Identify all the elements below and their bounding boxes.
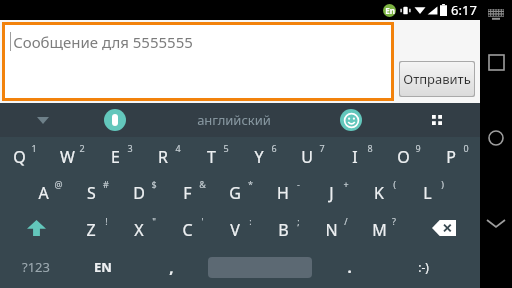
staticText: , (169, 257, 174, 277)
staticText: :-) (418, 259, 429, 275)
button[interactable]: , (134, 247, 208, 287)
staticText: X (134, 219, 144, 241)
button[interactable]: Backspace (408, 209, 480, 247)
staticText: ?123 (22, 258, 50, 276)
staticText: # (103, 178, 109, 190)
staticText: W (60, 146, 75, 168)
staticText: - (297, 178, 300, 190)
button[interactable]: L (408, 173, 456, 209)
button[interactable]: Recents (483, 49, 509, 75)
staticText: 0 (463, 142, 469, 154)
staticText: 3 (127, 142, 133, 154)
staticText: 5 (223, 142, 229, 154)
button[interactable]: C (168, 209, 216, 247)
staticText: R (158, 146, 168, 168)
staticText: 6 (271, 142, 277, 154)
staticText: I (352, 146, 358, 168)
staticText: H (277, 182, 289, 204)
button[interactable]: U (288, 137, 336, 173)
button[interactable]: S (72, 173, 120, 209)
button[interactable]: Show suggestions (26, 103, 60, 137)
staticText: 7 (319, 142, 325, 154)
button[interactable]: Shift (0, 209, 72, 247)
button[interactable]: Hide keyboard (483, 210, 509, 236)
staticText: U (301, 146, 313, 168)
staticText: L (423, 182, 432, 204)
button[interactable]: Отправить (400, 62, 474, 96)
button[interactable]: I (336, 137, 384, 173)
staticText: " (152, 215, 156, 227)
staticText: J (329, 182, 334, 204)
button[interactable]: :-) (386, 247, 460, 287)
staticText: * (248, 178, 253, 190)
staticText: P (446, 146, 456, 168)
staticText: D (133, 182, 145, 204)
staticText: 9 (415, 142, 421, 154)
button[interactable]: M (360, 209, 408, 247)
button[interactable]: E (96, 137, 144, 173)
button[interactable]: EN (72, 247, 134, 287)
button[interactable]: W (48, 137, 96, 173)
staticText: ) (441, 178, 444, 190)
staticText: EN (94, 258, 112, 276)
staticText: K (374, 182, 384, 204)
button[interactable]: V (216, 209, 264, 247)
button[interactable]: H (264, 173, 312, 209)
staticText: T (207, 146, 216, 168)
staticText: 2 (79, 142, 85, 154)
button[interactable]: G (216, 173, 264, 209)
staticText: En (385, 5, 395, 16)
button[interactable]: . (312, 247, 386, 287)
button[interactable]: B (264, 209, 312, 247)
button[interactable]: Сообщение для 5555555 (2, 22, 394, 101)
staticText: @ (54, 178, 63, 190)
staticText: E (111, 146, 120, 168)
staticText: : (249, 215, 252, 227)
button[interactable]: K (360, 173, 408, 209)
button[interactable]: X (120, 209, 168, 247)
button[interactable]: F (168, 173, 216, 209)
staticText: ! (105, 215, 108, 227)
staticText: $ (151, 178, 157, 190)
button[interactable]: J (312, 173, 360, 209)
staticText: Y (254, 146, 264, 168)
button[interactable]: ?123 (0, 247, 72, 287)
staticText: 1 (31, 142, 37, 154)
button[interactable]: Voice input (104, 109, 126, 131)
button[interactable]: Space (208, 247, 312, 287)
staticText: ? (392, 215, 396, 227)
button[interactable]: Q (0, 137, 48, 173)
button[interactable]: D (120, 173, 168, 209)
staticText: M (372, 219, 387, 241)
staticText: . (347, 257, 352, 277)
button[interactable]: Home (483, 125, 509, 151)
staticText: Q (13, 146, 26, 168)
button[interactable]: Emoji (340, 109, 362, 131)
button[interactable]: Z (72, 209, 120, 247)
button[interactable]: O (384, 137, 432, 173)
staticText: 4 (175, 142, 181, 154)
staticText: A (38, 182, 49, 204)
staticText: Сообщение для 5555555 (13, 32, 193, 52)
staticText: ' (201, 215, 204, 227)
staticText: Отправить (403, 70, 471, 88)
staticText: Z (86, 219, 96, 241)
staticText: G (229, 182, 241, 204)
button[interactable]: T (192, 137, 240, 173)
button[interactable]: R (144, 137, 192, 173)
staticText: F (183, 182, 192, 204)
button[interactable]: Y (240, 137, 288, 173)
button[interactable]: N (312, 209, 360, 247)
staticText: O (397, 146, 410, 168)
staticText: / (344, 215, 348, 227)
staticText: ( (393, 178, 396, 190)
staticText: английский (197, 111, 271, 129)
button[interactable]: A (24, 173, 72, 209)
button[interactable]: Keyboard layouts (426, 109, 448, 131)
button[interactable]: P (432, 137, 480, 173)
staticText: + (343, 178, 349, 190)
staticText: V (230, 219, 240, 241)
staticText: B (278, 219, 289, 241)
staticText: C (182, 219, 193, 241)
staticText: N (325, 219, 338, 241)
